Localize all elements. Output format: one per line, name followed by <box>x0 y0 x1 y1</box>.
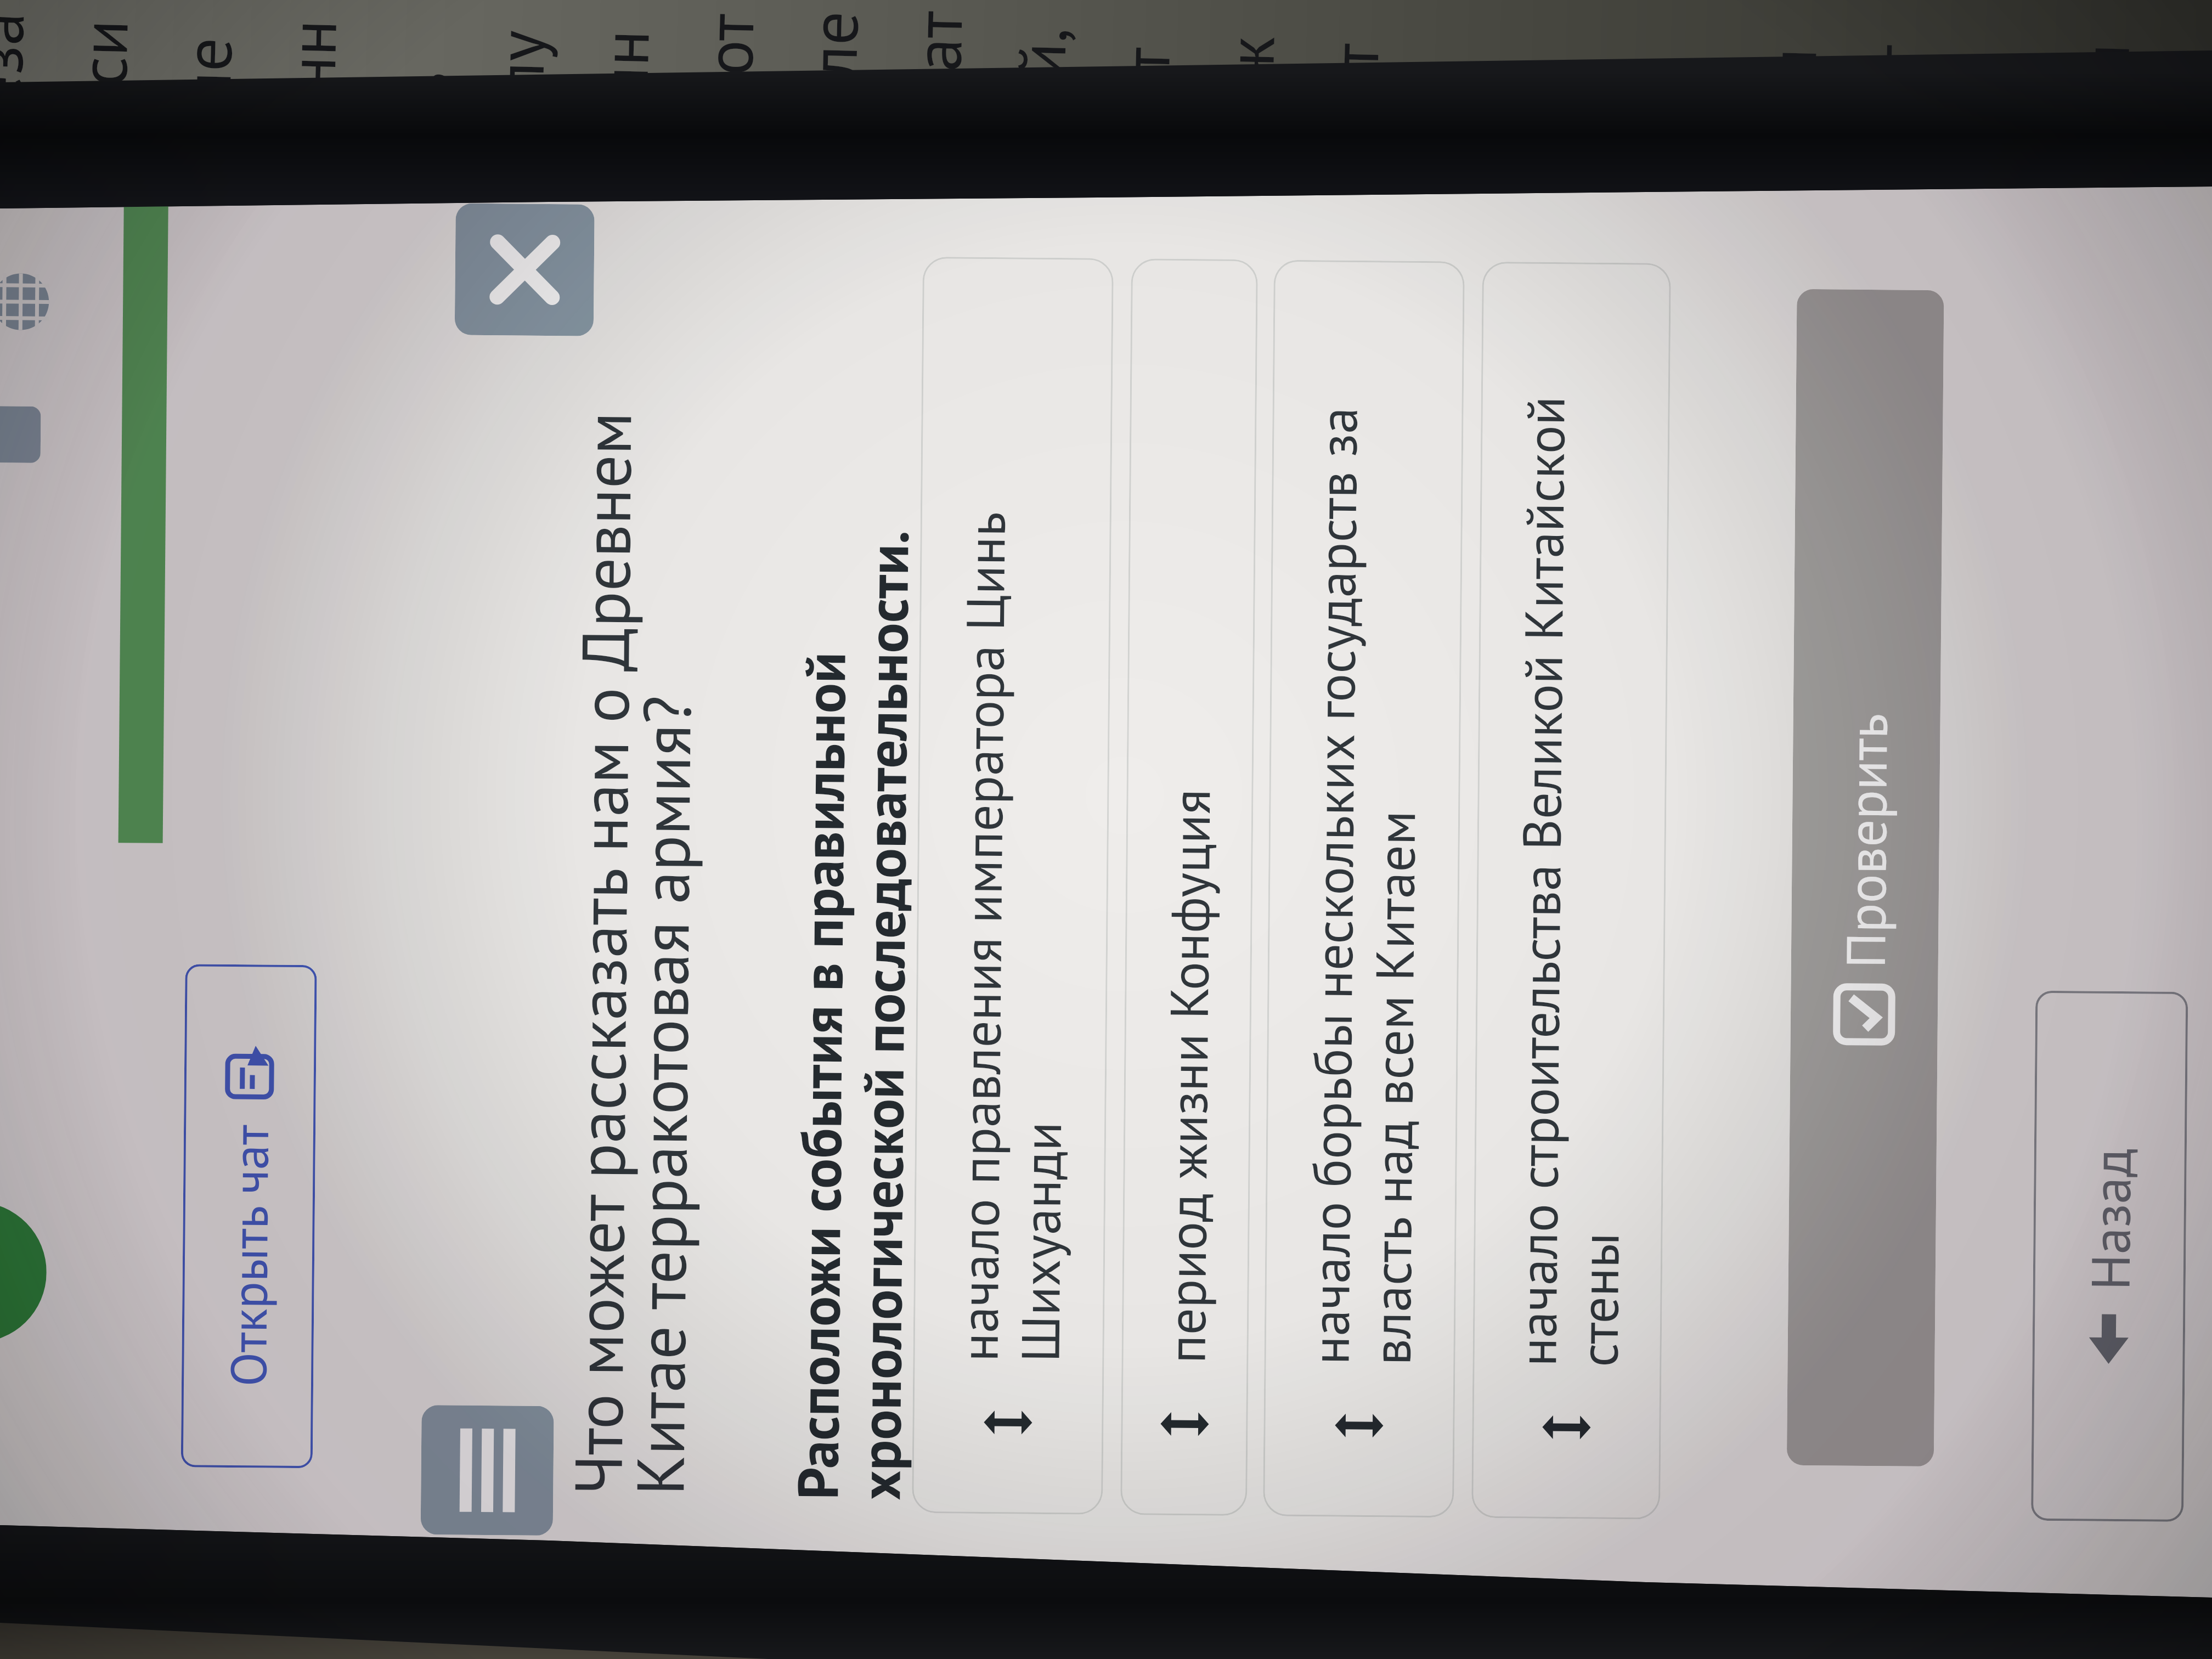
staticText: о том, что новые материалы способны улуч… <box>1432 24 2212 212</box>
staticText: Что может рассказать нам о Древнем Китае… <box>554 364 712 1496</box>
button[interactable]: начало строительства Великой Китайской с… <box>1471 262 1671 1519</box>
staticText: начало борьбы нескольких государств за в… <box>1294 388 1433 1365</box>
staticText: начало правления императора Цинь Шихуанд… <box>943 385 1082 1362</box>
button[interactable]: Проверить <box>1787 289 1944 1466</box>
button[interactable]: период жизни Конфуция <box>1120 259 1258 1516</box>
staticText: Назад <box>2075 1147 2146 1291</box>
button[interactable]: Tabs <box>0 405 41 463</box>
button[interactable]: Открыть чат <box>181 964 317 1468</box>
button[interactable]: Назад <box>2031 991 2188 1522</box>
staticText: Проверить <box>1829 713 1902 969</box>
staticText: период жизни Конфуция <box>1151 387 1228 1364</box>
button[interactable]: Menu <box>421 1405 554 1536</box>
staticText: Расположи события в правильной хронологи… <box>780 495 924 1500</box>
button[interactable]: Account <box>0 1201 47 1343</box>
staticText: начало строительства Великой Китайской с… <box>1502 390 1641 1367</box>
button[interactable]: начало правления императора Цинь Шихуанд… <box>912 257 1114 1515</box>
staticText: Открыть чат <box>215 1125 282 1387</box>
button[interactable]: Close <box>455 203 595 336</box>
button[interactable]: начало борьбы нескольких государств за в… <box>1263 260 1465 1518</box>
button[interactable]: Site info <box>0 273 49 330</box>
staticText: Независимые данные, полученные от исслед… <box>0 0 1398 188</box>
